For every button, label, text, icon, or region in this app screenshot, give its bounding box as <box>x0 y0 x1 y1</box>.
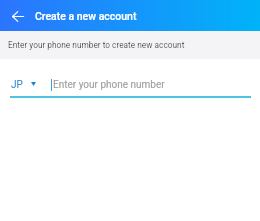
staticText: Enter your phone number <box>53 79 165 91</box>
staticText: Enter your phone number to create new ac… <box>8 40 185 50</box>
button[interactable]: Back <box>6 4 30 28</box>
staticText: JP <box>11 79 23 91</box>
button[interactable]: Select country code, JP <box>11 79 36 91</box>
staticText: Create a new account <box>35 10 137 22</box>
button[interactable]: Enter your phone number <box>51 66 250 104</box>
